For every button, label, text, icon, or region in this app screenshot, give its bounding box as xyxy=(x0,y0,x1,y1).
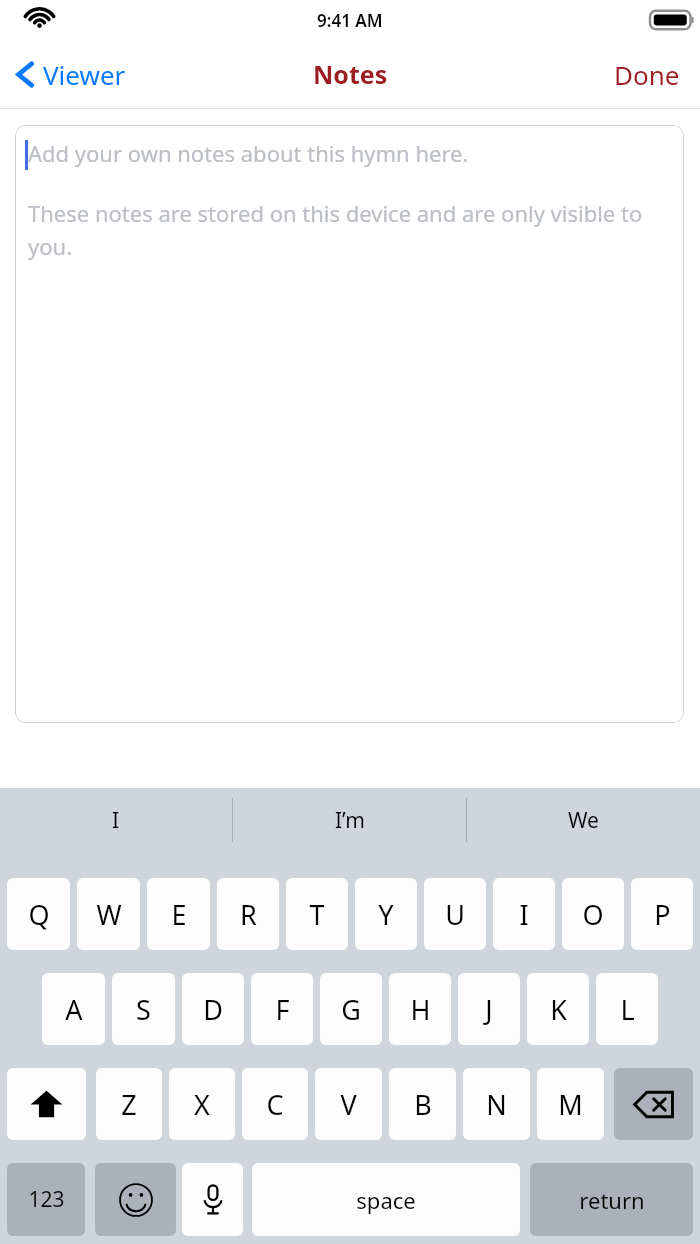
button[interactable]: W xyxy=(77,878,140,950)
button[interactable]: C xyxy=(242,1068,308,1140)
staticText: C xyxy=(266,1086,284,1123)
button[interactable]: X xyxy=(169,1068,235,1140)
staticText: S xyxy=(136,991,151,1028)
staticText: A xyxy=(65,991,83,1028)
button[interactable]: Done xyxy=(594,47,700,102)
staticText: J xyxy=(485,991,493,1028)
staticText: R xyxy=(240,896,257,933)
staticText: T xyxy=(309,896,325,933)
staticText: 9:41 AM xyxy=(317,9,383,32)
button[interactable]: R xyxy=(217,878,279,950)
button[interactable]: 123 xyxy=(7,1163,85,1236)
button[interactable]: D xyxy=(182,973,244,1045)
staticText: Notes xyxy=(313,57,388,91)
button[interactable]: space xyxy=(252,1163,520,1236)
staticText: G xyxy=(341,991,361,1028)
staticText: D xyxy=(203,991,223,1028)
staticText: Z xyxy=(121,1086,137,1123)
staticText: X xyxy=(194,1086,210,1123)
button[interactable]: Y xyxy=(355,878,417,950)
button[interactable]: F xyxy=(251,973,313,1045)
button[interactable]: J xyxy=(458,973,520,1045)
staticText: E xyxy=(171,896,187,933)
button[interactable]: O xyxy=(562,878,624,950)
staticText: V xyxy=(340,1086,357,1123)
staticText: H xyxy=(410,991,431,1028)
staticText: O xyxy=(582,896,604,933)
button[interactable]: We xyxy=(467,788,700,852)
button[interactable]: H xyxy=(389,973,451,1045)
button[interactable]: Q xyxy=(7,878,70,950)
staticText: L xyxy=(620,991,635,1028)
staticText: I xyxy=(112,806,120,835)
button[interactable]: Add your own notes about this hymn here. xyxy=(15,125,684,723)
button[interactable]: Viewer xyxy=(0,49,140,100)
button[interactable]: B xyxy=(389,1068,456,1140)
button[interactable]: E xyxy=(147,878,210,950)
staticText: These notes are stored on this device an… xyxy=(28,198,674,261)
button[interactable]: Dictate xyxy=(182,1163,243,1236)
staticText: Q xyxy=(28,896,50,933)
button[interactable]: L xyxy=(596,973,658,1045)
staticText: Viewer xyxy=(43,57,126,92)
button[interactable]: I xyxy=(493,878,555,950)
staticText: space xyxy=(356,1185,416,1215)
button[interactable]: I xyxy=(0,788,232,852)
button[interactable]: T xyxy=(286,878,348,950)
button[interactable]: M xyxy=(537,1068,604,1140)
staticText: We xyxy=(568,806,599,835)
button[interactable]: S xyxy=(112,973,175,1045)
staticText: N xyxy=(486,1086,507,1123)
staticText: P xyxy=(654,896,671,933)
staticText: B xyxy=(414,1086,432,1123)
button[interactable]: A xyxy=(42,973,105,1045)
staticText: Y xyxy=(378,896,394,933)
button[interactable]: Emoji keyboard xyxy=(95,1163,176,1236)
button[interactable]: Shift xyxy=(7,1068,86,1140)
button[interactable]: Z xyxy=(96,1068,162,1140)
button[interactable]: G xyxy=(320,973,382,1045)
button[interactable]: N xyxy=(463,1068,530,1140)
staticText: I’m xyxy=(335,806,365,835)
staticText: I xyxy=(519,896,529,933)
button[interactable]: V xyxy=(315,1068,382,1140)
staticText: F xyxy=(275,991,290,1028)
staticText: W xyxy=(96,896,122,933)
button[interactable]: return xyxy=(530,1163,693,1236)
staticText: Add your own notes about this hymn here. xyxy=(28,138,469,168)
staticText: M xyxy=(558,1086,583,1123)
staticText: return xyxy=(579,1185,645,1215)
button[interactable]: I’m xyxy=(233,788,466,852)
staticText: 123 xyxy=(28,1185,65,1214)
staticText: K xyxy=(550,991,567,1028)
button[interactable]: K xyxy=(527,973,589,1045)
button[interactable]: Backspace xyxy=(614,1068,693,1140)
staticText: U xyxy=(445,896,465,933)
button[interactable]: P xyxy=(631,878,693,950)
button[interactable]: U xyxy=(424,878,486,950)
